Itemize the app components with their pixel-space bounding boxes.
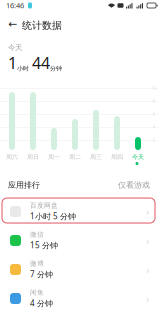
button[interactable]: Back: [6, 17, 20, 31]
staticText: ›: [146, 204, 149, 219]
staticText: 今天: [8, 43, 22, 52]
staticText: 周六: [6, 153, 18, 161]
staticText: 10: [151, 85, 157, 91]
staticText: 仅看游戏: [118, 180, 150, 190]
staticText: 统计数据: [22, 19, 62, 32]
staticText: 小时: [17, 65, 29, 72]
staticText: 2: [152, 137, 155, 143]
staticText: 周日: [27, 153, 39, 161]
staticText: 分钟: [50, 65, 62, 72]
staticText: 今天: [132, 153, 144, 161]
staticText: 8: [152, 98, 155, 104]
staticText: ›: [146, 291, 149, 306]
staticText: 4: [152, 124, 155, 130]
staticText: 44: [32, 52, 50, 74]
staticText: 1: [8, 52, 17, 74]
button[interactable]: 微信: [0, 226, 158, 255]
staticText: 16:46: [6, 0, 24, 10]
staticText: 4 分钟: [30, 298, 53, 309]
button[interactable]: 闲鱼: [0, 284, 158, 313]
staticText: 1小时 5 分钟: [30, 211, 76, 222]
button[interactable]: 百度网盘: [0, 197, 158, 226]
staticText: ›: [146, 233, 149, 248]
staticText: 6: [152, 111, 155, 117]
staticText: ←: [8, 18, 17, 30]
staticText: ›: [146, 262, 149, 277]
staticText: 微博: [30, 259, 44, 268]
staticText: 周二: [69, 153, 81, 161]
staticText: 周一: [48, 153, 60, 161]
staticText: 百度网盘: [30, 201, 58, 210]
staticText: 闲鱼: [30, 288, 44, 297]
button[interactable]: 仅看游戏: [118, 180, 150, 190]
staticText: 15 分钟: [30, 240, 58, 251]
staticText: 周三: [90, 153, 102, 161]
staticText: 7 分钟: [30, 269, 53, 280]
button[interactable]: 微博: [0, 255, 158, 284]
staticText: 应用排行: [8, 180, 40, 190]
staticText: 微信: [30, 230, 44, 239]
staticText: 周四: [111, 153, 123, 161]
